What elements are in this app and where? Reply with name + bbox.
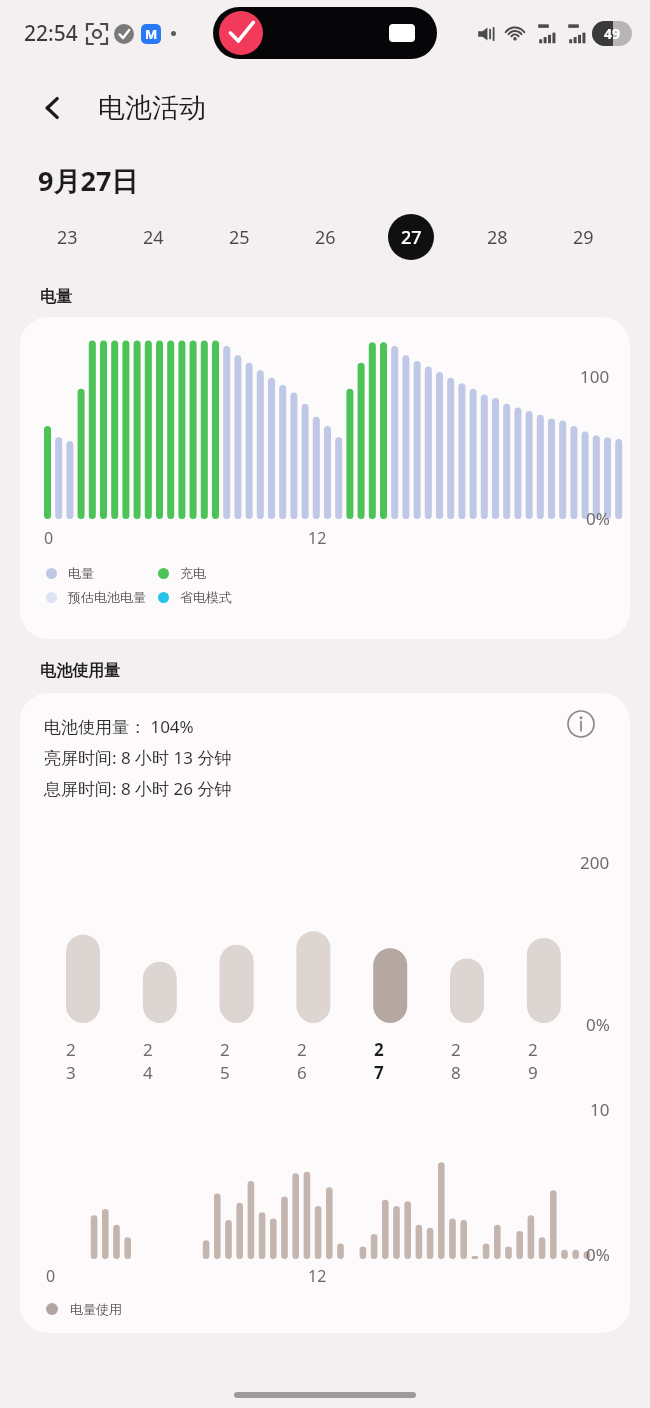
staticText: 23 [66,1038,80,1084]
staticText: 29 [528,1038,542,1084]
staticText: 息屏时间: 8 小时 26 分钟 [44,777,232,800]
staticText: 0% [586,507,610,530]
staticText: 22:54 [24,19,78,48]
staticText: 亮屏时间: 8 小时 13 分钟 [44,746,232,769]
staticText: 0% [586,1243,610,1266]
staticText: 27 [401,225,422,250]
staticText: 29 [573,225,594,250]
staticText: 9月27日 [38,162,139,199]
staticText: 10 [590,1098,610,1121]
staticText: 电池使用量 [40,661,120,681]
staticText: 电池使用量： 104% [44,715,194,738]
button[interactable]: 23 [24,211,110,263]
staticText: 26 [315,225,336,250]
staticText: 26 [297,1038,311,1084]
staticText: 27 [374,1038,388,1084]
staticText: M [145,25,158,43]
staticText: 0 [46,1265,56,1287]
button[interactable]: 100 [20,317,630,639]
staticText: 49 [604,24,621,43]
staticText: 25 [220,1038,234,1084]
button[interactable]: 24 [110,211,196,263]
staticText: 预估电池电量 [68,589,146,605]
staticText: 省电模式 [180,589,232,605]
button[interactable]: Back [30,85,76,131]
button[interactable]: 26 [282,211,368,263]
staticText: 100 [580,365,610,388]
staticText: 200 [580,851,610,874]
staticText: 25 [229,225,250,250]
button[interactable]: 28 [454,211,540,263]
staticText: 23 [57,225,78,250]
staticText: 28 [487,225,508,250]
staticText: 0 [44,527,54,549]
staticText: 电量使用 [70,1301,122,1317]
staticText: 28 [451,1038,465,1084]
staticText: 电量 [68,565,94,581]
button[interactable]: 27 [368,211,454,263]
staticText: 电量 [40,287,72,307]
staticText: 24 [143,1038,157,1084]
staticText: 12 [308,527,327,549]
staticText: 24 [143,225,164,250]
button[interactable]: 29 [540,211,626,263]
staticText: 0% [586,1013,610,1036]
staticText: 充电 [180,565,206,581]
button[interactable]: 25 [196,211,282,263]
staticText: 电池活动 [98,91,206,125]
button[interactable]: 电池使用量： 104% [20,693,630,1333]
button[interactable]: Info [560,703,602,745]
staticText: 12 [308,1265,327,1287]
